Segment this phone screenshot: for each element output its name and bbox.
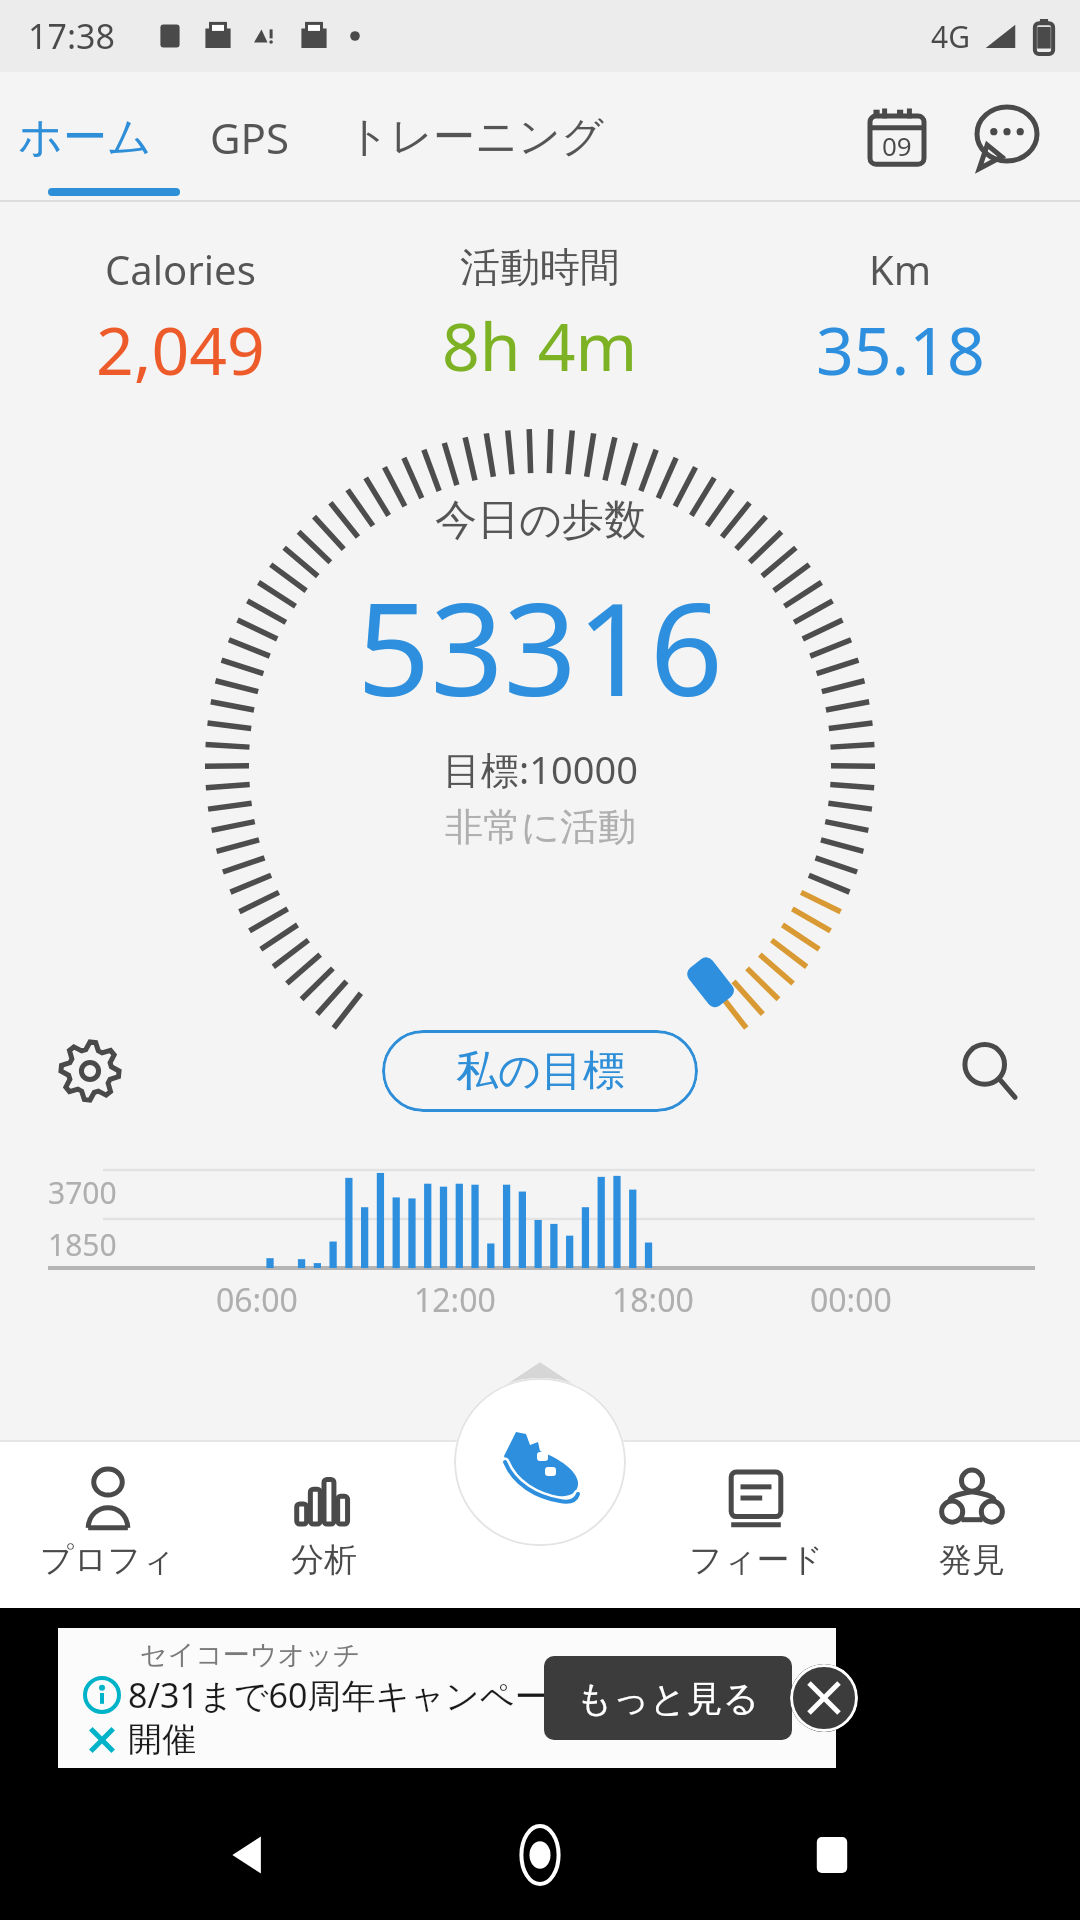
staticText: 分析 bbox=[291, 1539, 357, 1581]
staticText: Calories bbox=[105, 242, 256, 296]
staticText: 8/31まで60周年キャンペーン bbox=[128, 1672, 584, 1718]
staticText: 8h 4m bbox=[442, 300, 638, 390]
staticText: 4G bbox=[931, 16, 970, 57]
button[interactable]: GPS bbox=[170, 72, 330, 202]
staticText: Km bbox=[869, 242, 932, 296]
staticText: 09 bbox=[882, 128, 912, 163]
staticText: 35.18 bbox=[816, 304, 985, 394]
staticText: フィード bbox=[689, 1539, 824, 1581]
staticText: 活動時間 bbox=[460, 242, 620, 292]
button[interactable]: ホーム bbox=[0, 72, 170, 202]
button[interactable]: 分析 bbox=[216, 1440, 432, 1608]
staticText: 今日の歩数 bbox=[435, 494, 646, 547]
staticText: 3700 bbox=[48, 1172, 117, 1213]
staticText: 私の目標 bbox=[456, 1045, 625, 1098]
staticText: 06:00 bbox=[216, 1278, 298, 1322]
staticText: もっと見る bbox=[576, 1676, 760, 1721]
button[interactable]: Close ad bbox=[790, 1664, 858, 1732]
button[interactable]: プロフィ bbox=[0, 1440, 216, 1608]
button[interactable]: Recent apps bbox=[802, 1825, 862, 1885]
staticText: 12:00 bbox=[414, 1278, 496, 1322]
button[interactable]: Expand bbox=[0, 1358, 1080, 1408]
button[interactable]: Km bbox=[720, 242, 1080, 394]
staticText: 開催 bbox=[128, 1718, 196, 1761]
staticText: 目標:10000 bbox=[443, 743, 638, 795]
staticText: 18:00 bbox=[612, 1278, 694, 1322]
button[interactable]: Back bbox=[218, 1825, 278, 1885]
button[interactable]: Settings bbox=[50, 1031, 130, 1111]
button[interactable]: フィード bbox=[648, 1440, 864, 1608]
button[interactable]: Calories bbox=[0, 242, 360, 394]
button[interactable]: 発見 bbox=[864, 1440, 1080, 1608]
button[interactable]: 私の目標 bbox=[382, 1030, 698, 1112]
staticText: 2,049 bbox=[96, 304, 265, 394]
button[interactable]: Home bbox=[504, 1819, 576, 1891]
button[interactable]: 活動時間 bbox=[360, 242, 720, 390]
staticText: ホーム bbox=[18, 110, 153, 165]
button[interactable]: トレーニング bbox=[330, 72, 620, 202]
staticText: トレーニング bbox=[347, 111, 604, 164]
staticText: 1850 bbox=[48, 1224, 117, 1265]
staticText: GPS bbox=[210, 109, 290, 166]
staticText: プロフィ bbox=[40, 1539, 176, 1581]
button[interactable]: Activity bbox=[454, 1378, 626, 1546]
button[interactable]: Messages bbox=[952, 82, 1062, 192]
staticText: 17:38 bbox=[28, 13, 115, 59]
staticText: 発見 bbox=[939, 1539, 1005, 1581]
button[interactable]: Calendar bbox=[842, 82, 952, 192]
staticText: 非常に活動 bbox=[445, 803, 636, 851]
button[interactable]: Search bbox=[950, 1031, 1030, 1111]
staticText: 53316 bbox=[357, 559, 724, 733]
staticText: セイコーウオッチ bbox=[140, 1638, 361, 1672]
staticText: 00:00 bbox=[810, 1278, 892, 1322]
button[interactable]: もっと見る bbox=[544, 1656, 792, 1740]
